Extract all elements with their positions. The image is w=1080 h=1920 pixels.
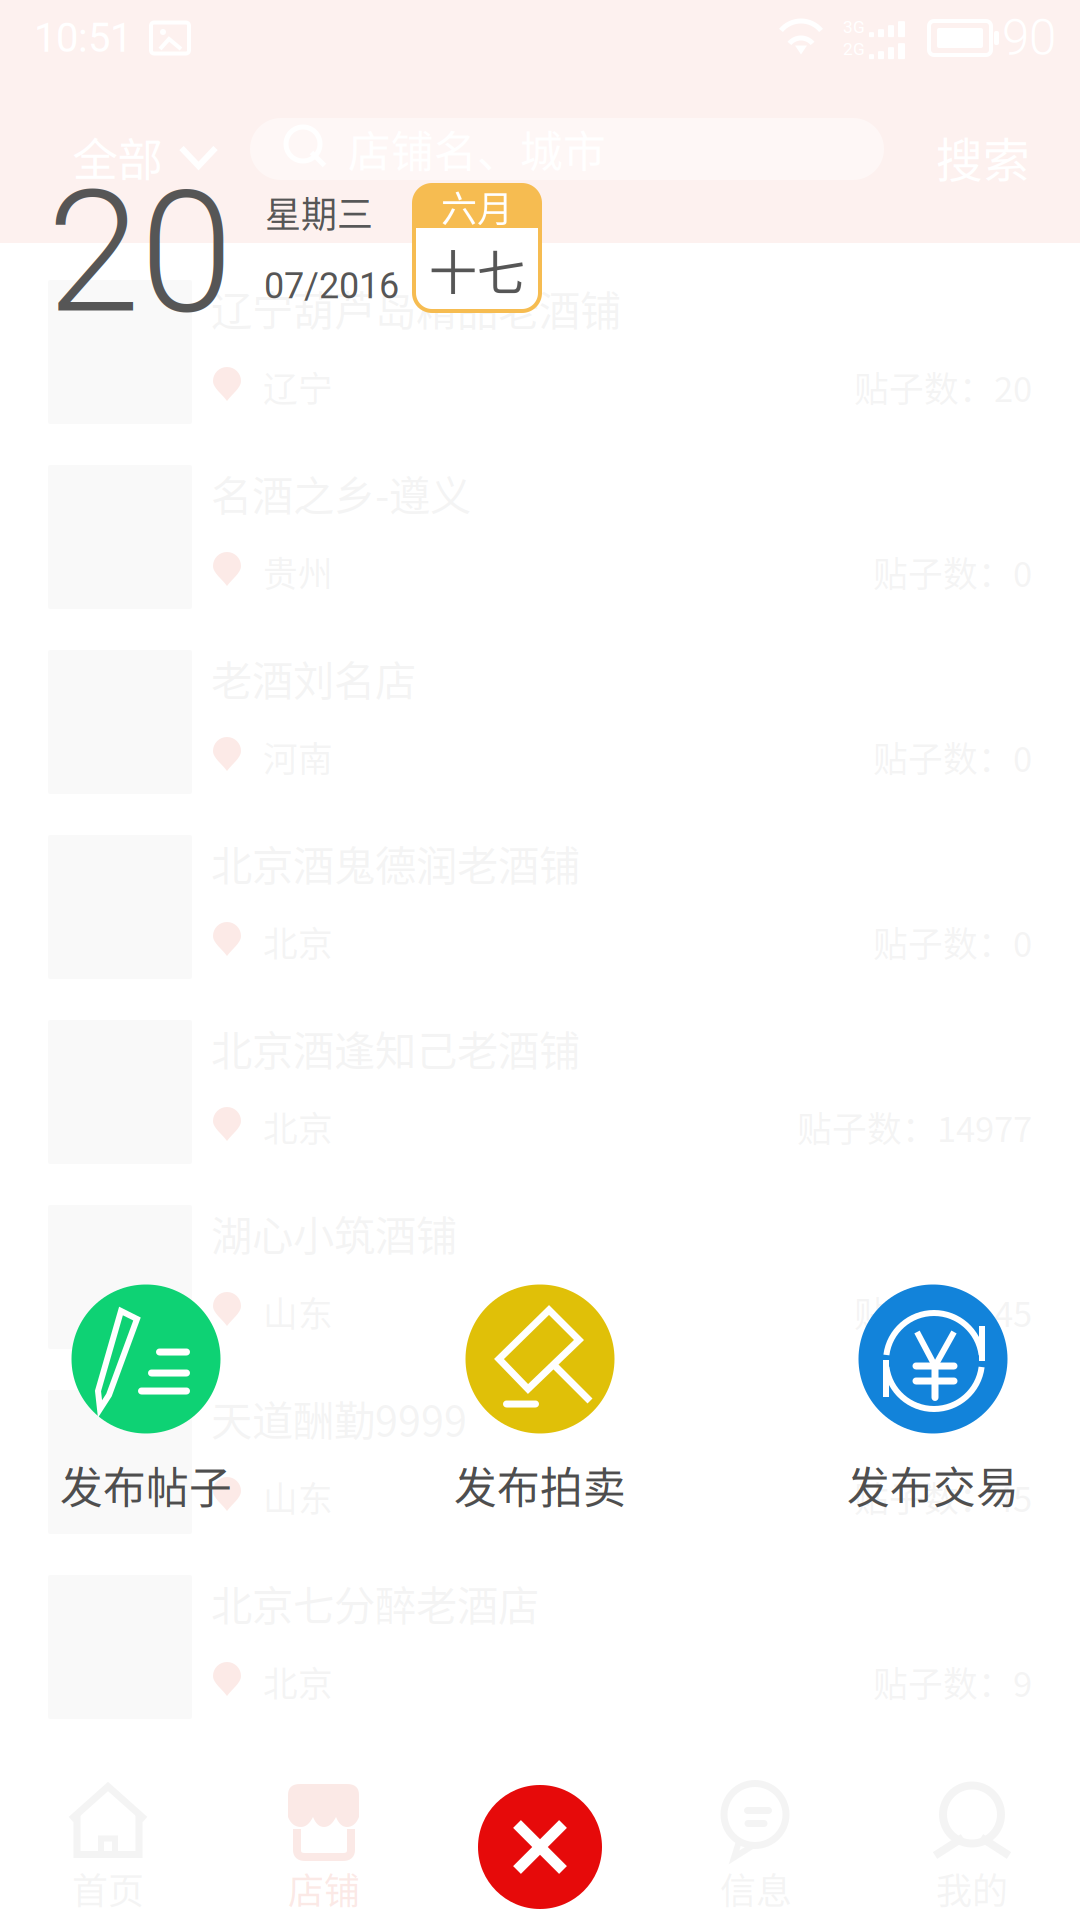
staticText: 店铺名、城市 (348, 118, 606, 180)
staticText: 发布拍卖 (454, 1454, 626, 1516)
button[interactable]: 发布拍卖 (400, 1282, 680, 1522)
staticText: 北京 (263, 1657, 333, 1707)
staticText: 首页 (72, 1862, 144, 1914)
staticText: 信息 (720, 1862, 792, 1914)
staticText: 10:51 (34, 15, 132, 61)
button[interactable]: 搜索 (918, 117, 1048, 197)
staticText: 北京酒鬼德润老酒铺 (211, 833, 580, 893)
staticText: 天道酬勤9999 (211, 1388, 467, 1448)
staticText: 2G (843, 39, 865, 59)
staticText: 贴子数：0 (873, 547, 1032, 597)
staticText: 辽宁葫芦岛精品老酒铺 (211, 278, 621, 338)
button[interactable]: Close (478, 1785, 602, 1909)
staticText: 星期三 (265, 186, 373, 238)
staticText: 发布帖子 (60, 1454, 232, 1516)
button[interactable]: 全部 (46, 117, 246, 197)
staticText: 我的 (936, 1862, 1008, 1914)
staticText: 贴子数：45 (854, 1472, 1032, 1522)
staticText: 山东 (263, 1287, 333, 1337)
staticText: 山东 (263, 1472, 333, 1522)
button[interactable]: 店铺 (216, 1772, 432, 1919)
staticText: 20 (47, 155, 233, 351)
staticText: 贴子数：14977 (797, 1102, 1032, 1152)
staticText: 湖心小筑酒铺 (211, 1203, 457, 1263)
staticText: 07/2016 (264, 265, 399, 307)
staticText: 贵州 (263, 547, 333, 597)
staticText: 十七 (429, 235, 525, 304)
staticText: 发布交易 (847, 1454, 1019, 1516)
staticText: 河南 (263, 732, 333, 782)
staticText: 贴子数：0 (873, 732, 1032, 782)
staticText: 贴子数：0 (873, 917, 1032, 967)
button[interactable]: 发布帖子 (6, 1282, 286, 1522)
staticText: 北京 (263, 1102, 333, 1152)
staticText: 名酒之乡-遵义 (211, 463, 471, 523)
staticText: 北京 (263, 917, 333, 967)
staticText: 北京酒逢知己老酒铺 (211, 1018, 580, 1078)
staticText: 辽宁 (263, 362, 333, 412)
staticText: 全部 (72, 124, 162, 190)
staticText: 贴子数：45 (854, 1287, 1032, 1337)
staticText: 店铺 (288, 1862, 360, 1914)
staticText: 90 (1002, 9, 1056, 67)
staticText: 北京七分醉老酒店 (211, 1573, 539, 1633)
staticText: 贴子数：20 (854, 362, 1032, 412)
button[interactable]: 发布交易 (793, 1282, 1073, 1522)
staticText: 搜索 (936, 123, 1030, 191)
staticText: 3G (843, 17, 865, 37)
staticText: 六月 (441, 180, 513, 232)
staticText: 老酒刘名店 (211, 648, 416, 708)
staticText: 贴子数：9 (873, 1657, 1032, 1707)
